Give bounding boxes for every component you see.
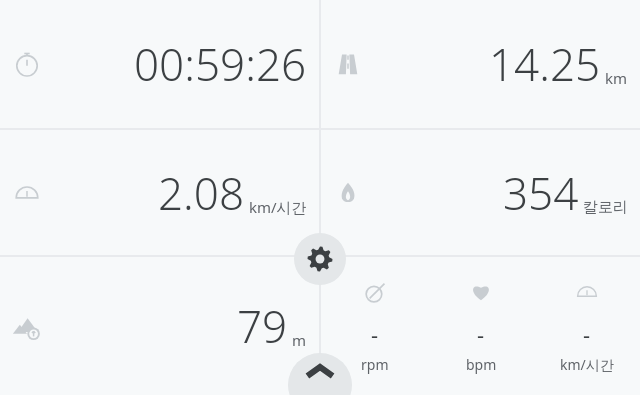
other: Calories bbox=[333, 178, 363, 208]
staticText: - bbox=[583, 319, 591, 349]
other: Elevation bbox=[12, 311, 42, 341]
staticText: 칼로리 bbox=[583, 198, 628, 217]
button[interactable]: Heart rate bbox=[428, 257, 534, 395]
button[interactable]: Distance bbox=[321, 0, 640, 128]
other: Speed bbox=[574, 279, 600, 305]
staticText: bpm bbox=[466, 355, 497, 374]
button[interactable]: Speed bbox=[0, 130, 319, 255]
button[interactable]: Speed bbox=[534, 257, 640, 395]
other: Cadence bbox=[362, 279, 388, 305]
staticText: 14.25 bbox=[489, 34, 601, 94]
other: Heart rate bbox=[468, 279, 494, 305]
other: Distance bbox=[333, 49, 363, 79]
staticText: km bbox=[605, 68, 628, 88]
staticText: - bbox=[477, 319, 485, 349]
button[interactable]: Calories bbox=[321, 130, 640, 255]
button[interactable]: Settings bbox=[294, 233, 346, 285]
staticText: 354 bbox=[503, 163, 579, 223]
staticText: rpm bbox=[361, 355, 389, 374]
button[interactable]: Cadence bbox=[321, 257, 428, 395]
staticText: 2.08 bbox=[158, 163, 245, 223]
other: Speed bbox=[12, 178, 42, 208]
button[interactable]: Expand bbox=[288, 353, 352, 395]
staticText: km/시간 bbox=[560, 355, 614, 374]
staticText: 00:59:26 bbox=[134, 34, 307, 94]
staticText: m bbox=[292, 330, 307, 350]
staticText: 79 bbox=[237, 296, 288, 356]
staticText: km/시간 bbox=[249, 197, 307, 217]
button[interactable]: Elevation bbox=[0, 257, 319, 395]
button[interactable]: Duration bbox=[0, 0, 319, 128]
other: Duration bbox=[12, 49, 42, 79]
staticText: - bbox=[371, 319, 379, 349]
